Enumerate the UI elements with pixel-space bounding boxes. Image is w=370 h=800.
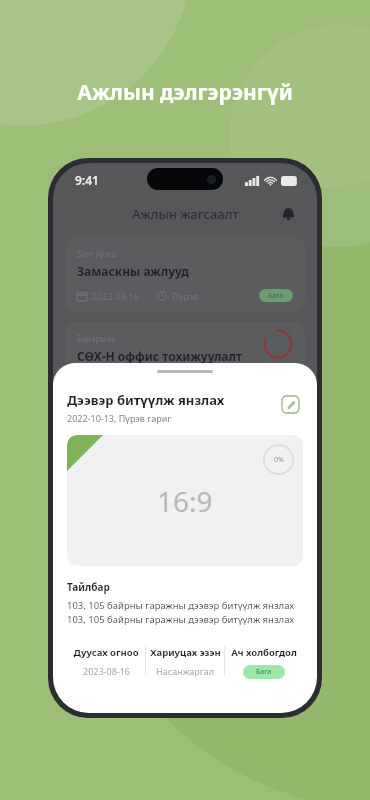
staticText: Тайлбар: [67, 580, 110, 594]
staticText: СӨХ-Н оффис тохижуулалт: [77, 348, 243, 364]
staticText: Замаскны ажлууд: [77, 263, 189, 279]
staticText: Ач холбогдол: [231, 646, 297, 659]
staticText: Насанжаргал: [156, 665, 215, 677]
button[interactable]: Баяармаа: [65, 322, 305, 375]
staticText: 16:9: [157, 482, 213, 520]
staticText: 2023-08-16: [83, 665, 130, 677]
staticText: Ажлын жагсаалт: [132, 205, 239, 223]
button[interactable]: Notifications: [275, 201, 301, 227]
staticText: 2022-10-13, Пүрэв гариг: [67, 412, 172, 424]
staticText: 9:41: [75, 172, 99, 188]
button[interactable]: Edit: [277, 391, 303, 417]
staticText: Дээвэр битүүлж янзлах: [67, 391, 225, 409]
staticText: 0%: [274, 455, 284, 465]
staticText: 20%: [271, 339, 285, 349]
staticText: Бага: [268, 291, 284, 301]
staticText: Бага: [256, 667, 272, 677]
staticText: 103, 105 байрны гаражны дээвэр битүүлж я…: [67, 599, 303, 626]
staticText: Ажлын дэлгэрэнгүй: [77, 78, 293, 107]
staticText: Пүрэв: [172, 290, 199, 302]
staticText: Дуусах огноо: [73, 646, 139, 659]
button[interactable]: Sam Ajuva: [65, 237, 305, 313]
staticText: Хариуцах эзэн: [150, 646, 221, 659]
staticText: Баяармаа: [77, 333, 116, 344]
staticText: Sam Ajuva: [77, 248, 117, 259]
staticText: 2023-08-16: [92, 290, 139, 302]
